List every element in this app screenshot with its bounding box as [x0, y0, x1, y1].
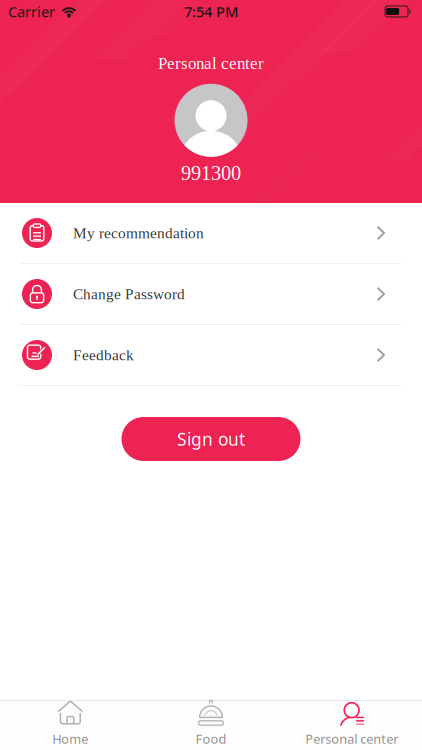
- staticText: 7:54 PM: [184, 1, 238, 21]
- button[interactable]: Personal center: [281, 700, 422, 750]
- button[interactable]: Change Password: [0, 264, 422, 325]
- staticText: Home: [52, 730, 88, 748]
- button[interactable]: Sign out: [121, 417, 300, 461]
- button[interactable]: Home: [0, 700, 141, 750]
- staticText: Carrier: [8, 1, 55, 21]
- staticText: Feedback: [73, 346, 134, 363]
- staticText: Personal center: [158, 54, 264, 73]
- button[interactable]: Feedback: [0, 325, 422, 386]
- staticText: Change Password: [73, 285, 185, 302]
- staticText: Sign out: [177, 427, 245, 451]
- staticText: Food: [195, 730, 226, 748]
- staticText: Personal center: [305, 730, 398, 748]
- button[interactable]: Food: [141, 700, 281, 750]
- staticText: My recommendation: [73, 224, 204, 241]
- button[interactable]: My recommendation: [0, 203, 422, 264]
- staticText: 991300: [181, 162, 241, 184]
